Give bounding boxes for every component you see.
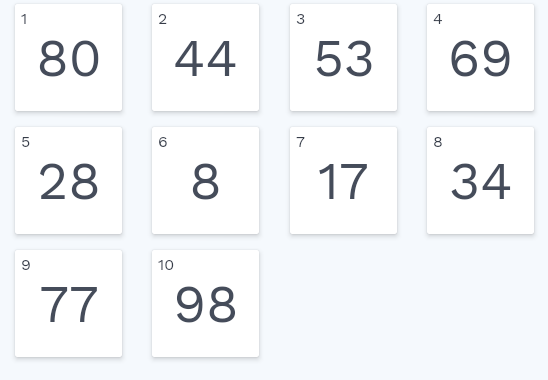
staticText: 98: [173, 273, 239, 335]
button[interactable]: 1: [15, 4, 122, 111]
staticText: 77: [39, 273, 99, 335]
button[interactable]: 9: [15, 250, 122, 357]
staticText: 10: [158, 255, 175, 274]
staticText: 17: [318, 150, 369, 212]
staticText: 8: [189, 150, 222, 212]
staticText: 9: [21, 255, 31, 274]
button[interactable]: 5: [15, 127, 122, 234]
staticText: 7: [296, 132, 305, 151]
button[interactable]: 2: [152, 4, 259, 111]
button[interactable]: 6: [152, 127, 259, 234]
staticText: 6: [158, 132, 168, 151]
staticText: 1: [21, 9, 28, 28]
button[interactable]: 4: [427, 4, 534, 111]
button[interactable]: 7: [290, 127, 397, 234]
staticText: 44: [173, 27, 238, 89]
staticText: 3: [296, 9, 306, 28]
staticText: 53: [313, 27, 375, 89]
button[interactable]: 10: [152, 250, 259, 357]
staticText: 28: [37, 150, 101, 212]
staticText: 5: [21, 132, 31, 151]
staticText: 2: [158, 9, 168, 28]
button[interactable]: 3: [290, 4, 397, 111]
staticText: 8: [433, 132, 443, 151]
staticText: 34: [449, 150, 513, 212]
staticText: 4: [433, 9, 443, 28]
button[interactable]: 8: [427, 127, 534, 234]
staticText: 69: [448, 27, 513, 89]
staticText: 80: [36, 27, 102, 89]
